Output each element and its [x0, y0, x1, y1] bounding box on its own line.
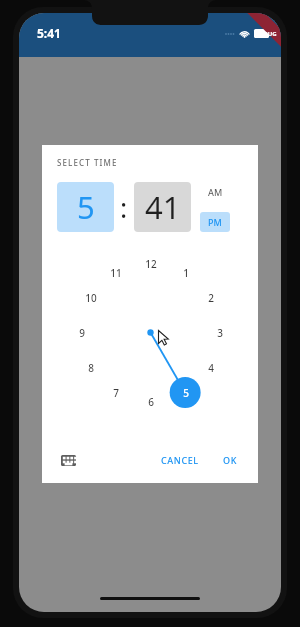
staticText: 5 [183, 386, 189, 400]
button[interactable]: 5 [57, 182, 114, 232]
staticText: 2 [208, 291, 214, 305]
staticText: OK [223, 454, 237, 466]
staticText: SELECT TIME [57, 157, 118, 168]
staticText: PM [208, 216, 222, 228]
staticText: 1 [183, 266, 189, 280]
staticText: 4 [208, 361, 214, 375]
staticText: 9 [79, 326, 85, 340]
button[interactable]: Switch to text input mode [55, 447, 81, 473]
staticText: 5 [77, 186, 95, 228]
staticText: DEBUG [256, 30, 277, 38]
staticText: 11 [110, 266, 122, 280]
button[interactable]: 12 [68, 250, 233, 415]
staticText: 8 [88, 361, 94, 375]
staticText: CANCEL [161, 454, 199, 466]
staticText: AM [208, 186, 223, 198]
button[interactable]: CANCEL [153, 448, 207, 472]
button[interactable]: AM [200, 182, 230, 202]
button[interactable]: 41 [134, 182, 191, 232]
staticText: 6 [148, 395, 154, 409]
staticText: 10 [85, 291, 97, 305]
button[interactable]: PM [200, 212, 230, 232]
staticText: 41 [145, 186, 181, 228]
staticText: 3 [217, 326, 223, 340]
button[interactable]: OK [215, 448, 245, 472]
staticText: : [120, 189, 128, 226]
staticText: 5:41 [37, 25, 61, 41]
staticText: 7 [113, 386, 119, 400]
staticText: 12 [145, 257, 157, 271]
